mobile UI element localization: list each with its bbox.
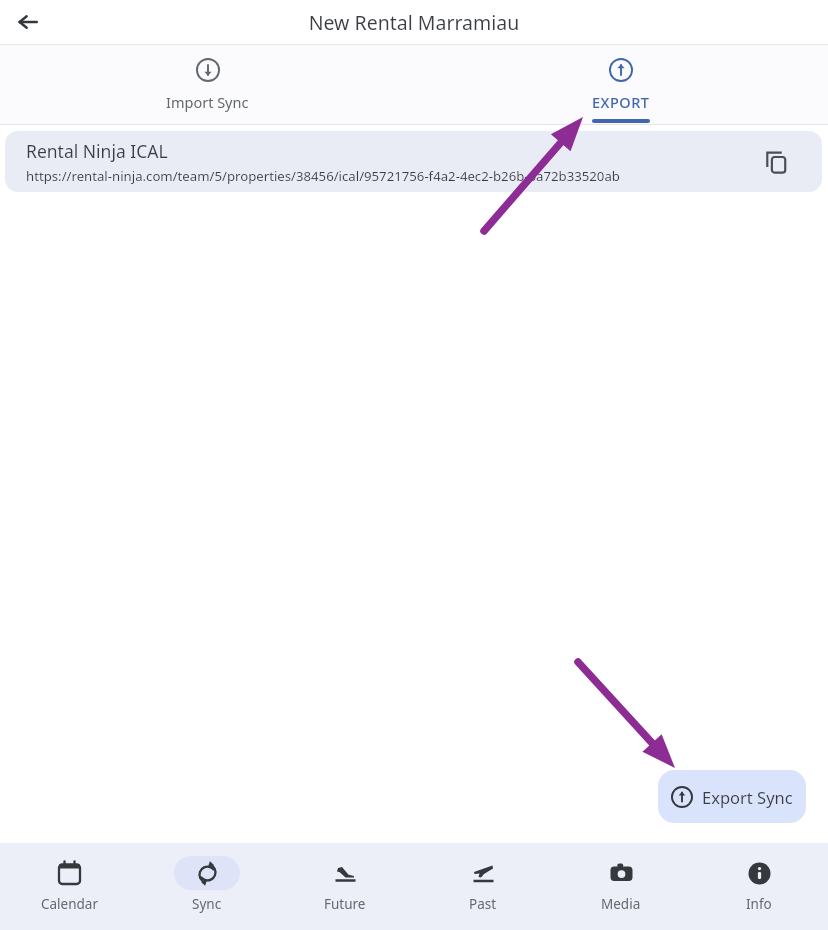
- staticText: Past: [469, 895, 497, 913]
- button[interactable]: EXPORT: [414, 45, 828, 125]
- button[interactable]: Export Sync: [658, 770, 806, 823]
- staticText: Media: [601, 895, 641, 913]
- button[interactable]: Import Sync: [0, 45, 414, 125]
- button[interactable]: Past: [414, 843, 552, 930]
- button[interactable]: Info: [690, 843, 828, 930]
- button[interactable]: Copy link: [758, 144, 794, 180]
- staticText: Rental Ninja ICAL: [26, 139, 168, 163]
- button[interactable]: Calendar: [0, 843, 138, 930]
- staticText: Import Sync: [166, 92, 249, 112]
- staticText: Sync: [192, 895, 222, 913]
- button[interactable]: Media: [552, 843, 690, 930]
- button[interactable]: Rental Ninja ICAL: [5, 131, 822, 192]
- staticText: https://rental-ninja.com/team/5/properti…: [26, 167, 620, 185]
- staticText: New Rental Marramiau: [0, 9, 828, 36]
- staticText: Info: [746, 895, 772, 913]
- staticText: Future: [324, 895, 366, 913]
- staticText: Calendar: [41, 895, 98, 913]
- button[interactable]: Back: [8, 2, 48, 42]
- staticText: EXPORT: [592, 92, 650, 112]
- staticText: Export Sync: [702, 786, 793, 808]
- button[interactable]: Future: [276, 843, 414, 930]
- button[interactable]: Sync: [138, 843, 276, 930]
